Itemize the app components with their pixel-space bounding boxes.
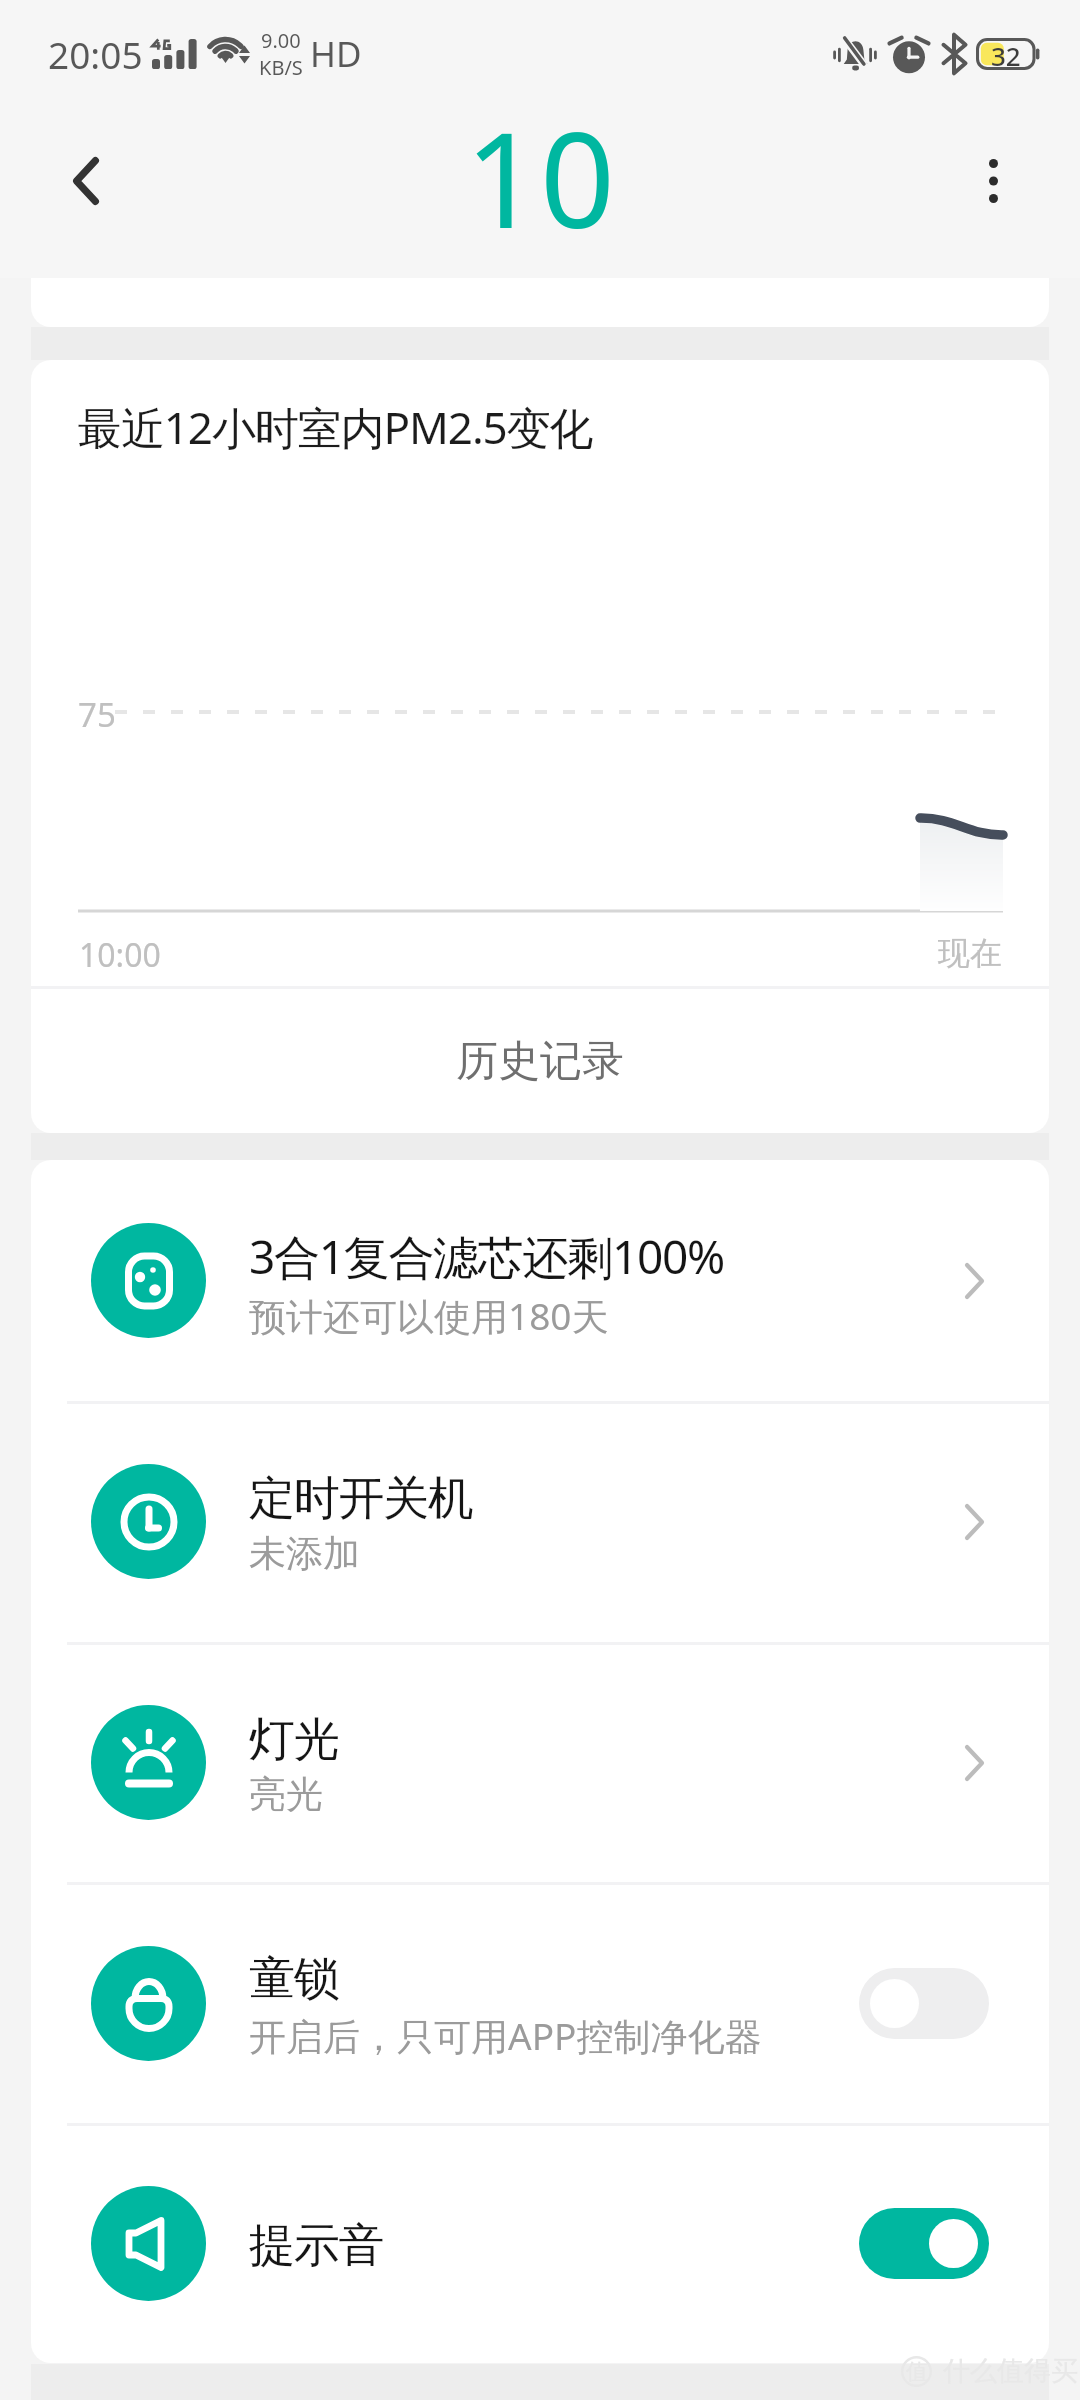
staticText: 预计还可以使用180天: [249, 1290, 609, 1341]
button[interactable]: Back: [36, 131, 136, 231]
staticText: 亮光: [249, 1771, 323, 1818]
button[interactable]: 定时开关机: [31, 1401, 1049, 1642]
staticText: 3合1复合滤芯还剩100%: [249, 1225, 724, 1288]
button[interactable]: Toggle on: [859, 2208, 989, 2279]
staticText: HD: [310, 30, 362, 78]
button[interactable]: 3合1复合滤芯还剩100%: [31, 1160, 1049, 1401]
staticText: 什么值得买: [943, 2354, 1078, 2388]
staticText: 灯光: [249, 1711, 339, 1769]
staticText: 现在: [938, 933, 1002, 973]
button[interactable]: 童锁: [31, 1883, 1049, 2124]
staticText: 历史记录: [456, 1035, 624, 1088]
staticText: 童锁: [249, 1950, 339, 2008]
button[interactable]: 提示音: [31, 2124, 1049, 2363]
staticText: 开启后，只可用APP控制净化器: [249, 2010, 762, 2061]
button[interactable]: 灯光: [31, 1642, 1049, 1883]
staticText: 未添加: [249, 1530, 360, 1577]
staticText: 提示音: [249, 2217, 384, 2275]
staticText: 值: [906, 2358, 928, 2386]
staticText: 32: [991, 38, 1021, 70]
button[interactable]: More options: [943, 131, 1043, 231]
button[interactable]: 历史记录: [31, 989, 1049, 1133]
staticText: 20:05: [48, 29, 143, 79]
staticText: 最近12小时室内PM2.5变化: [78, 397, 593, 457]
staticText: 9.00: [261, 27, 301, 54]
staticText: 定时开关机: [249, 1470, 473, 1528]
staticText: 75: [78, 692, 116, 737]
staticText: 10: [465, 88, 615, 258]
button[interactable]: Toggle off: [859, 1968, 989, 2039]
staticText: 10:00: [79, 933, 161, 977]
staticText: KB/S: [259, 54, 303, 81]
